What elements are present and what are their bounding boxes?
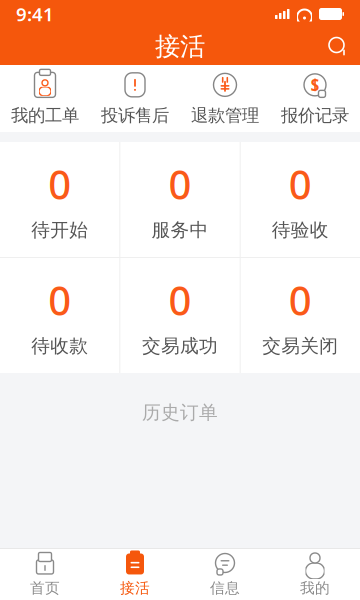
staticText: 待开始: [31, 219, 88, 241]
staticText: 待收款: [31, 335, 88, 357]
staticText: 交易关闭: [262, 335, 338, 357]
button[interactable]: 投诉售后: [90, 61, 180, 136]
button[interactable]: Search: [316, 28, 360, 65]
staticText: 交易成功: [142, 335, 218, 357]
button[interactable]: 我的工单: [0, 61, 90, 136]
staticText: 0: [168, 157, 191, 211]
staticText: 0: [289, 157, 312, 211]
staticText: 我的工单: [11, 105, 79, 126]
button[interactable]: 0: [120, 142, 240, 257]
button[interactable]: 0: [0, 258, 119, 373]
button[interactable]: S: [270, 61, 360, 136]
staticText: 9:41: [16, 2, 54, 26]
staticText: 信息: [210, 579, 240, 597]
staticText: 接活: [120, 579, 150, 597]
staticText: 退款管理: [191, 105, 259, 126]
staticText: 0: [48, 273, 71, 327]
staticText: 我的: [300, 579, 330, 597]
button[interactable]: 信息: [180, 546, 270, 600]
staticText: 首页: [30, 579, 60, 597]
button[interactable]: 0: [120, 258, 240, 373]
staticText: 历史订单: [142, 401, 218, 424]
button[interactable]: 接活: [90, 546, 180, 600]
staticText: 0: [48, 157, 71, 211]
button[interactable]: 退款管理: [180, 61, 270, 136]
staticText: 0: [168, 273, 191, 327]
button[interactable]: 我的: [270, 546, 360, 600]
button[interactable]: 0: [241, 142, 360, 257]
button[interactable]: 0: [0, 142, 119, 257]
staticText: 0: [289, 273, 312, 327]
staticText: 投诉售后: [101, 105, 169, 126]
staticText: 接活: [155, 31, 205, 62]
button[interactable]: 首页: [0, 546, 90, 600]
button[interactable]: 0: [241, 258, 360, 373]
staticText: 报价记录: [281, 105, 349, 126]
staticText: 待验收: [272, 219, 329, 241]
staticText: 服务中: [151, 219, 208, 241]
staticText: S: [310, 74, 319, 95]
